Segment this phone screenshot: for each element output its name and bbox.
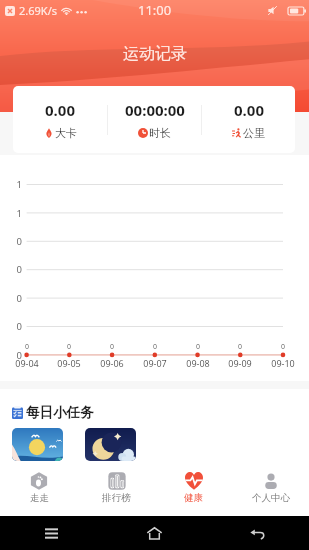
staticText: 0 — [0, 349, 22, 362]
staticText: 个人中心 — [252, 492, 290, 504]
staticText: 0 — [273, 342, 293, 352]
staticText: 0 — [230, 342, 250, 352]
button[interactable]: 排行榜 — [78, 464, 155, 516]
staticText: 00:00:00 — [125, 100, 185, 120]
staticText: 0 — [0, 263, 22, 276]
staticText: 1 — [0, 207, 22, 220]
staticText: 1 — [0, 178, 22, 191]
staticText: 0.00 — [45, 100, 75, 120]
staticText: 排行榜 — [102, 492, 131, 504]
staticText: 时长 — [149, 126, 171, 140]
staticText: 0 — [188, 342, 208, 352]
staticText: 11:00 — [138, 1, 172, 19]
staticText: 09-10 — [263, 357, 303, 369]
staticText: 0 — [102, 342, 122, 352]
button[interactable]: 00:00:00 — [108, 86, 201, 153]
staticText: 走走 — [30, 492, 49, 504]
button[interactable]: 0.00 — [13, 86, 107, 153]
staticText: 09-05 — [49, 357, 89, 369]
staticText: 0.00 — [234, 100, 264, 120]
staticText: 09-09 — [220, 357, 260, 369]
button[interactable]: 走走 — [0, 464, 78, 516]
staticText: 0 — [145, 342, 165, 352]
button[interactable]: 个人中心 — [232, 464, 309, 516]
staticText: 09-04 — [7, 357, 47, 369]
button[interactable] — [85, 428, 136, 461]
staticText: 0 — [17, 342, 37, 352]
button[interactable]: Home — [103, 516, 206, 550]
staticText: 运动记录 — [123, 44, 187, 64]
staticText: 公里 — [243, 126, 265, 140]
staticText: 健康 — [184, 492, 203, 504]
staticText: 09-06 — [92, 357, 132, 369]
button[interactable]: Recent apps — [0, 516, 103, 550]
button[interactable]: 0.00 — [202, 86, 295, 153]
button[interactable]: Back — [206, 516, 309, 550]
staticText: 2.69K/s — [19, 3, 57, 18]
staticText: 09-08 — [178, 357, 218, 369]
staticText: 0 — [59, 342, 79, 352]
staticText: 大卡 — [55, 126, 77, 140]
staticText: 0 — [0, 320, 22, 333]
staticText: 每日小任务 — [26, 404, 94, 421]
staticText: 0 — [0, 292, 22, 305]
staticText: 0 — [0, 235, 22, 248]
button[interactable] — [12, 428, 63, 461]
button[interactable]: 健康 — [155, 464, 232, 516]
staticText: 09-07 — [135, 357, 175, 369]
